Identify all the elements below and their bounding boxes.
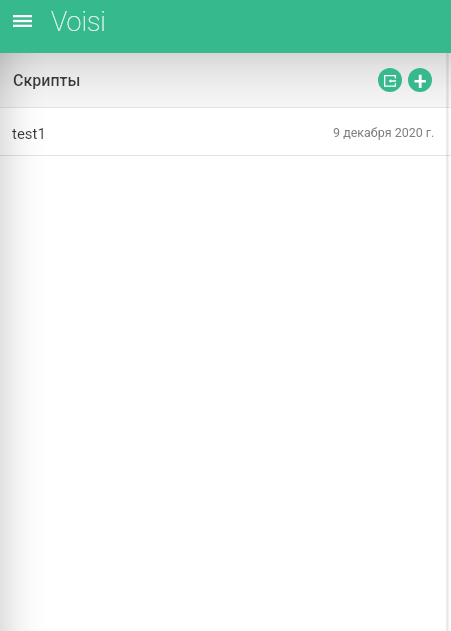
staticText: Voisi [51,6,106,38]
staticText: 9 декабря 2020 г. [333,125,435,140]
button[interactable]: Menu [2,1,42,41]
button[interactable]: Add script [408,68,432,92]
staticText: Скрипты [13,71,81,90]
button[interactable]: test1 [0,108,451,155]
staticText: test1 [12,125,46,143]
button[interactable]: Import script [378,68,402,92]
